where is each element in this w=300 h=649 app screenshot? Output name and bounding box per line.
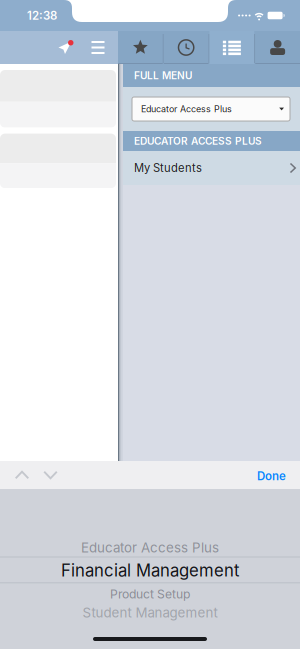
staticText: Financial Management	[61, 560, 239, 581]
button[interactable]: Favorites	[118, 31, 163, 64]
button[interactable]: Previous field	[7, 461, 37, 489]
button[interactable]: Menu	[86, 34, 110, 60]
staticText: Educator Access Plus	[141, 104, 232, 114]
staticText: 12:38	[27, 9, 57, 22]
staticText: FULL MENU	[134, 69, 192, 82]
button[interactable]: Full Menu	[209, 31, 254, 64]
button[interactable]: Messages	[53, 34, 77, 60]
button[interactable]: Account	[255, 31, 300, 64]
staticText: EDUCATOR ACCESS PLUS	[134, 135, 262, 147]
button[interactable]: Educator Access Plus	[123, 87, 300, 131]
staticText: Done	[257, 469, 286, 483]
button[interactable]: My Students	[123, 151, 300, 185]
staticText: My Students	[134, 161, 202, 175]
button[interactable]: Recents	[164, 31, 209, 64]
staticText: Product Setup	[110, 587, 190, 601]
button[interactable]: Done	[243, 461, 300, 489]
staticText: Student Management	[82, 605, 217, 621]
button[interactable]: Next field	[37, 461, 64, 489]
staticText: Educator Access Plus	[81, 539, 219, 556]
